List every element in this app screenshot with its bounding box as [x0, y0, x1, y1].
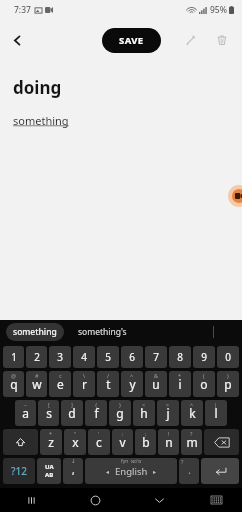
staticText: 3: [57, 350, 63, 364]
button[interactable]: t: [97, 371, 119, 397]
button[interactable]: something's: [74, 323, 131, 341]
staticText: 1: [11, 350, 17, 364]
staticText: ?: [190, 430, 193, 437]
button[interactable]: 3: [49, 346, 71, 368]
button[interactable]: Edit: [174, 24, 206, 56]
staticText: .: [188, 462, 191, 477]
button[interactable]: ,: [63, 458, 83, 484]
button[interactable]: y: [121, 371, 143, 397]
button[interactable]: k: [181, 400, 203, 426]
staticText: something: [13, 326, 57, 338]
staticText: SAVE: [119, 34, 144, 47]
staticText: l: [214, 405, 218, 421]
staticText: (: [203, 372, 205, 379]
staticText: 95%: [210, 4, 227, 16]
button[interactable]: d: [61, 400, 83, 426]
button[interactable]: c: [88, 429, 110, 455]
staticText: <: [142, 401, 146, 408]
button[interactable]: 9: [193, 346, 215, 368]
button[interactable]: 0: [217, 346, 239, 368]
button[interactable]: m: [181, 429, 202, 455]
staticText: w: [32, 376, 42, 392]
staticText: q: [10, 376, 18, 392]
staticText: ,: [72, 463, 75, 477]
button[interactable]: Delete: [206, 24, 238, 56]
staticText: ?: [181, 458, 184, 465]
button[interactable]: e: [49, 371, 71, 397]
button[interactable]: Keyboard settings: [191, 488, 242, 512]
button[interactable]: p: [217, 371, 239, 397]
staticText: fyn ɴo'ɒ: [121, 458, 142, 465]
button[interactable]: q: [3, 371, 24, 397]
button[interactable]: .: [179, 458, 199, 484]
button[interactable]: w: [26, 371, 47, 397]
button[interactable]: 4: [73, 346, 95, 368]
staticText: >: [166, 401, 170, 408]
staticText: !: [168, 430, 170, 437]
button[interactable]: 1: [3, 346, 24, 368]
button[interactable]: o: [193, 371, 215, 397]
button[interactable]: z: [40, 429, 62, 455]
staticText: 5: [105, 350, 111, 364]
staticText: b: [142, 434, 150, 450]
staticText: p: [224, 376, 232, 392]
staticText: z: [48, 434, 54, 450]
button[interactable]: Switch language: [37, 458, 61, 484]
button[interactable]: 6: [121, 346, 143, 368]
button[interactable]: 7: [145, 346, 167, 368]
staticText: @: [11, 372, 16, 379]
button[interactable]: 5: [97, 346, 119, 368]
button[interactable]: Enter: [201, 458, 239, 484]
staticText: *: [49, 430, 53, 437]
button[interactable]: n: [158, 429, 179, 455]
staticText: ": [74, 430, 77, 437]
staticText: e: [57, 376, 64, 392]
button[interactable]: s: [38, 400, 59, 426]
button[interactable]: x: [64, 429, 86, 455]
staticText: k: [189, 405, 196, 421]
button[interactable]: i: [169, 371, 191, 397]
button[interactable]: v: [112, 429, 133, 455]
staticText: s: [46, 405, 52, 421]
button[interactable]: SAVE: [102, 28, 161, 53]
button[interactable]: g: [109, 400, 131, 426]
staticText: d: [68, 405, 76, 421]
button[interactable]: ?12: [3, 458, 35, 484]
staticText: f: [94, 405, 99, 421]
staticText: j: [166, 405, 170, 421]
button[interactable]: something: [6, 323, 64, 341]
button[interactable]: Recents: [0, 488, 63, 512]
staticText: ^: [130, 372, 134, 379]
button[interactable]: Space: [85, 458, 177, 484]
staticText: m: [186, 434, 198, 450]
button[interactable]: f: [85, 400, 107, 426]
button[interactable]: 2: [26, 346, 47, 368]
button[interactable]: j: [157, 400, 179, 426]
button[interactable]: l: [205, 400, 227, 426]
staticText: ▸: [153, 468, 157, 475]
button[interactable]: Home: [63, 488, 127, 512]
staticText: [: [48, 401, 50, 408]
button[interactable]: u: [145, 371, 167, 397]
button[interactable]: Backspace: [204, 429, 239, 455]
staticText: ;: [145, 430, 147, 437]
button[interactable]: 8: [169, 346, 191, 368]
staticText: 9: [201, 350, 207, 364]
button[interactable]: Screen recorder: [228, 185, 242, 207]
staticText: |: [214, 401, 218, 408]
staticText: ↓: [71, 458, 76, 464]
button[interactable]: b: [135, 429, 156, 455]
staticText: something's: [78, 326, 127, 338]
button[interactable]: Shift: [3, 429, 38, 455]
button[interactable]: r: [73, 371, 95, 397]
staticText: x: [72, 434, 79, 450]
button[interactable]: h: [133, 400, 155, 426]
button[interactable]: Back: [0, 23, 34, 57]
button[interactable]: a: [15, 400, 36, 426]
staticText: i: [178, 376, 182, 392]
staticText: {: [95, 401, 98, 408]
button[interactable]: Hide keyboard: [127, 488, 191, 512]
staticText: \: [83, 372, 86, 379]
staticText: c: [96, 434, 102, 450]
staticText: &: [154, 372, 159, 379]
